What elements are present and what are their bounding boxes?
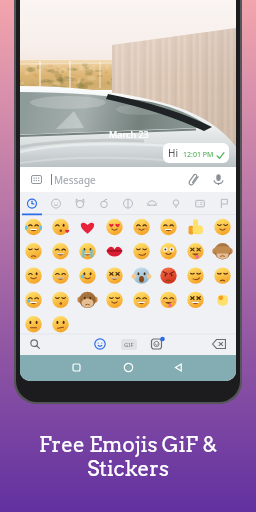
staticText: Hi — [168, 146, 178, 160]
staticText: Message — [54, 173, 96, 187]
button[interactable]: Backspace — [212, 337, 226, 351]
staticText: 12:01 PM — [183, 150, 214, 160]
staticText: GIF — [124, 341, 134, 349]
button[interactable]: Recents — [69, 360, 84, 375]
button[interactable]: Emoji — [93, 337, 107, 351]
button[interactable]: GIF — [121, 339, 137, 350]
button[interactable]: Hi — [168, 146, 224, 160]
button[interactable]: Stickers — [150, 337, 164, 351]
button[interactable]: Home — [121, 360, 136, 375]
button[interactable]: Voice message — [212, 173, 225, 186]
button[interactable]: Back — [171, 360, 186, 375]
staticText: Free Emojis GiF & Stickers — [0, 432, 256, 481]
button[interactable]: Search emoji — [28, 337, 42, 351]
button[interactable]: Attach — [187, 173, 200, 186]
staticText: March 23 — [109, 128, 149, 140]
